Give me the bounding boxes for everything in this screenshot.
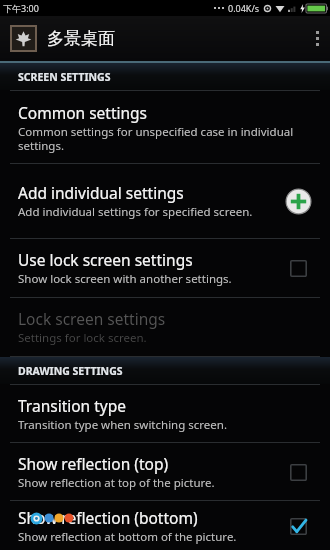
staticText: Show reflection at top of the picture. bbox=[18, 475, 215, 491]
staticText: Show lock screen with another settings. bbox=[18, 271, 232, 287]
button[interactable]: Checked checkbox bbox=[284, 512, 312, 540]
staticText: Common settings for unspecified case in … bbox=[18, 124, 320, 153]
staticText: SCREEN SETTINGS bbox=[18, 70, 111, 84]
button[interactable]: Transition type bbox=[0, 385, 330, 442]
button[interactable]: Show reflection (bottom) bbox=[0, 501, 330, 550]
staticText: Common settings bbox=[18, 102, 148, 123]
button[interactable]: Add individual settings bbox=[285, 188, 312, 215]
staticText: Show reflection (top) bbox=[18, 453, 169, 474]
button[interactable]: Unchecked checkbox bbox=[284, 458, 312, 486]
staticText: 0.04K/s bbox=[228, 2, 260, 14]
button[interactable]: Use lock screen settings bbox=[0, 239, 330, 297]
button[interactable]: Common settings bbox=[0, 91, 330, 163]
button[interactable]: Add individual settings bbox=[0, 164, 330, 238]
staticText: Add individual settings for specified sc… bbox=[18, 204, 253, 220]
staticText: Use lock screen settings bbox=[18, 249, 193, 270]
staticText: Transition type when switching screen. bbox=[18, 417, 227, 433]
staticText: Add individual settings bbox=[18, 182, 184, 203]
staticText: Transition type bbox=[18, 395, 126, 416]
staticText: DRAWING SETTINGS bbox=[18, 364, 123, 378]
button[interactable]: Unchecked checkbox bbox=[284, 254, 312, 282]
staticText: 下午3:00 bbox=[3, 2, 39, 14]
staticText: Show reflection at bottom of the picture… bbox=[18, 529, 237, 545]
staticText: 多景桌面 bbox=[47, 28, 115, 49]
staticText: Show reflection (bottom) bbox=[18, 507, 198, 528]
button[interactable]: Show reflection (top) bbox=[0, 443, 330, 500]
button: Lock screen settings bbox=[0, 298, 330, 356]
button[interactable]: More options bbox=[304, 16, 330, 61]
staticText: Settings for lock screen. bbox=[18, 330, 147, 346]
staticText: Lock screen settings bbox=[18, 308, 166, 329]
